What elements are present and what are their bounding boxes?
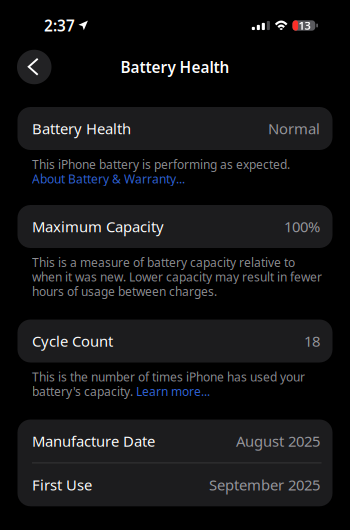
staticText: 13: [298, 18, 310, 33]
staticText: 2:37: [44, 15, 75, 36]
staticText: Manufacture Date: [32, 431, 155, 451]
button[interactable]: Cycle Count: [17, 319, 332, 362]
staticText: Normal: [268, 119, 320, 138]
button[interactable]: Maximum Capacity: [17, 205, 332, 248]
staticText: Cycle Count: [32, 331, 113, 351]
button[interactable]: Back: [17, 50, 51, 84]
staticText: This iPhone battery is performing as exp…: [32, 156, 290, 172]
staticText: Battery Health: [32, 119, 131, 138]
staticText: About Battery & Warranty...: [32, 171, 185, 187]
staticText: First Use: [32, 475, 92, 495]
staticText: This is a measure of battery capacity re…: [32, 254, 295, 270]
staticText: August 2025: [236, 431, 320, 451]
staticText: Learn more...: [136, 383, 210, 399]
staticText: This is the number of times iPhone has u…: [32, 369, 305, 385]
staticText: hours of usage between charges.: [32, 283, 217, 299]
staticText: Battery Health: [120, 57, 229, 77]
button[interactable]: Manufacture Date: [17, 419, 332, 462]
button[interactable]: First Use: [17, 463, 332, 506]
staticText: 100%: [284, 217, 320, 236]
staticText: battery's capacity.: [32, 383, 136, 399]
staticText: 18: [304, 331, 320, 351]
staticText: September 2025: [209, 475, 320, 495]
staticText: when it was new. Lower capacity may resu…: [32, 269, 322, 285]
button[interactable]: Battery Health: [17, 107, 332, 150]
staticText: Maximum Capacity: [32, 217, 164, 236]
